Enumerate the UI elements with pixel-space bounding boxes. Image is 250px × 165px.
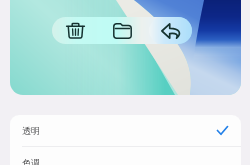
button[interactable]: 透明 [10,115,241,146]
button[interactable]: Delete [59,17,92,44]
button[interactable]: Undo [153,17,190,44]
button[interactable]: 色调 [10,147,241,165]
staticText: 透明 [22,125,40,136]
staticText: 色调 [22,157,40,165]
button[interactable]: Move to folder [106,17,139,44]
